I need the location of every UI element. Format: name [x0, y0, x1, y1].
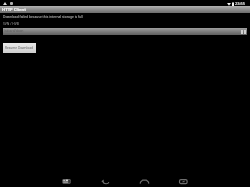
button[interactable]: Resume Download — [3, 43, 36, 53]
button[interactable]: Recent apps — [179, 178, 188, 185]
button[interactable]: HTTP Client — [0, 6, 250, 13]
staticText: 23:55 — [235, 1, 245, 6]
button[interactable]: Keyboard — [62, 178, 71, 185]
staticText: /sdcard/down — [4, 29, 24, 33]
staticText: Download failed because this internal st… — [3, 14, 83, 18]
staticText: HTTP Client — [2, 7, 27, 13]
button[interactable]: Home — [140, 178, 149, 185]
button[interactable]: Back — [101, 178, 110, 185]
button[interactable]: /sdcard/down — [3, 28, 247, 35]
staticText: SVN / HVB — [3, 21, 19, 25]
staticText: Resume Download — [5, 46, 34, 50]
